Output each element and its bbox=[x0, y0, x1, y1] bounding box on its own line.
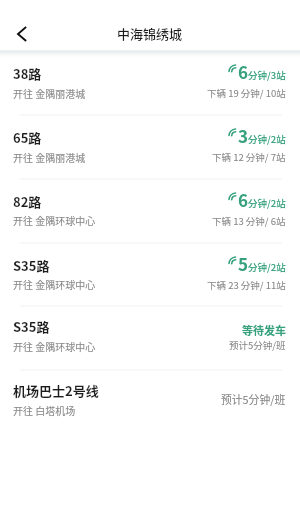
staticText: 6分钟/2站 bbox=[238, 187, 286, 212]
button[interactable] bbox=[0, 52, 300, 116]
staticText: 开往 白塔机场 bbox=[13, 403, 76, 417]
staticText: 下辆 23 分钟/ 11站 bbox=[207, 278, 286, 292]
button[interactable] bbox=[0, 243, 300, 307]
button[interactable] bbox=[0, 307, 300, 371]
staticText: 等待发车 bbox=[242, 322, 286, 338]
staticText: 开往 金隅丽港城 bbox=[13, 150, 86, 164]
staticText: 下辆 12 分钟/ 7站 bbox=[212, 150, 286, 164]
button[interactable] bbox=[0, 115, 300, 179]
staticText: 65路 bbox=[13, 128, 42, 147]
staticText: 5分钟/2站 bbox=[238, 251, 286, 276]
staticText: 下辆 19 分钟/ 10站 bbox=[207, 86, 286, 100]
staticText: S35路 bbox=[13, 256, 50, 275]
staticText: 下辆 13 分钟/ 6站 bbox=[212, 214, 286, 228]
staticText: 6分钟/3站 bbox=[238, 59, 286, 84]
staticText: 82路 bbox=[13, 192, 42, 211]
staticText: 开往 金隅环球中心 bbox=[13, 339, 96, 353]
staticText: 机场巴士2号线 bbox=[13, 381, 99, 400]
staticText: 预计5分钟/班 bbox=[221, 391, 286, 407]
button[interactable]: Back bbox=[4, 17, 38, 51]
staticText: 开往 金隅丽港城 bbox=[13, 86, 86, 100]
staticText: 3分钟/2站 bbox=[238, 123, 286, 148]
staticText: 中海锦绣城 bbox=[117, 24, 183, 43]
button[interactable] bbox=[0, 179, 300, 243]
staticText: S35路 bbox=[13, 317, 50, 336]
staticText: 开往 金隅环球中心 bbox=[13, 277, 96, 291]
staticText: 预计5分钟/班 bbox=[229, 338, 286, 352]
button[interactable] bbox=[0, 371, 300, 435]
staticText: 开往 金隅环球中心 bbox=[13, 213, 96, 227]
staticText: 38路 bbox=[13, 64, 42, 83]
